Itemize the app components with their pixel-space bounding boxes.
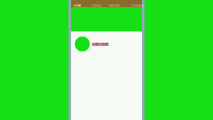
button[interactable]: VIDEOS [88,2,105,9]
button[interactable]: PLAYLISTS [105,2,122,9]
staticText: VIDEOS [92,4,101,7]
staticText: PLAYLISTS [109,4,119,7]
button[interactable]: Channel avatar [75,36,90,51]
staticText: CHANNELS [130,4,143,7]
button[interactable]: CHANNELS [128,2,145,9]
button[interactable]: HOME [69,2,86,9]
staticText: HOME [74,4,81,7]
button[interactable]: SUBSCRIBE [90,41,110,48]
staticText: SUBSCRIBE [92,43,109,46]
